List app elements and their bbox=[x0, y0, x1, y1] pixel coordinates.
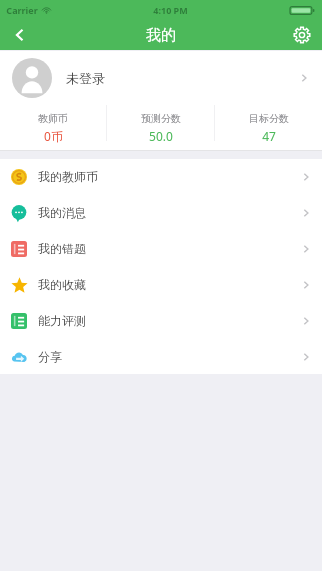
staticText: 47 bbox=[262, 128, 276, 144]
button[interactable]: 未登录 bbox=[0, 51, 322, 105]
staticText: Carrier bbox=[6, 4, 38, 16]
staticText: 教师币 bbox=[38, 112, 68, 125]
staticText: 能力评测 bbox=[38, 313, 86, 328]
staticText: 预测分数 bbox=[141, 112, 181, 125]
staticText: 我的教师币 bbox=[38, 169, 98, 184]
button[interactable]: 分享 bbox=[0, 339, 322, 374]
button[interactable]: Back bbox=[0, 20, 40, 50]
button[interactable]: 我的收藏 bbox=[0, 267, 322, 302]
staticText: 我的错题 bbox=[38, 241, 86, 256]
staticText: 我的收藏 bbox=[38, 277, 86, 292]
staticText: 目标分数 bbox=[249, 112, 289, 125]
staticText: 50.0 bbox=[149, 128, 173, 144]
staticText: 0币 bbox=[44, 128, 63, 144]
button[interactable]: 我的消息 bbox=[0, 195, 322, 230]
staticText: 分享 bbox=[38, 349, 62, 364]
button[interactable]: 我的教师币 bbox=[0, 159, 322, 194]
staticText: 未登录 bbox=[66, 70, 105, 86]
staticText: 我的消息 bbox=[38, 205, 86, 220]
button[interactable]: 我的错题 bbox=[0, 231, 322, 266]
staticText: 我的 bbox=[146, 26, 176, 45]
button[interactable]: 能力评测 bbox=[0, 303, 322, 338]
button[interactable]: Settings bbox=[282, 20, 322, 50]
staticText: 4:10 PM bbox=[153, 4, 188, 16]
